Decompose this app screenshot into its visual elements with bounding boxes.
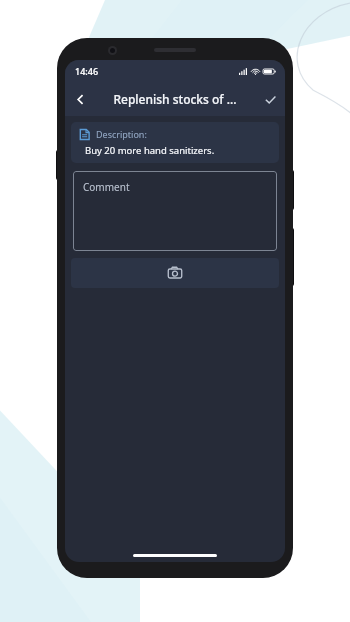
staticText: Replenish stocks of ...: [113, 91, 237, 107]
button[interactable]: Save: [255, 84, 285, 114]
button[interactable]: Description:: [71, 122, 279, 163]
button[interactable]: Take photo: [71, 258, 279, 288]
staticText: Buy 20 more hand sanitizers.: [85, 144, 215, 157]
staticText: Comment: [83, 180, 130, 194]
staticText: 14:46: [75, 65, 99, 77]
button[interactable]: Back: [65, 84, 95, 114]
button[interactable]: Comment: [73, 171, 277, 251]
staticText: Description:: [96, 128, 147, 140]
